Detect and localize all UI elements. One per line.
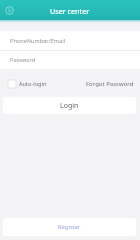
button[interactable]: Auto-login (8, 80, 47, 88)
staticText: Register (58, 223, 81, 231)
button[interactable]: Login (3, 97, 136, 114)
button[interactable]: Forgot Password (86, 80, 134, 88)
button[interactable]: Back (3, 4, 16, 17)
staticText: Auto-login (19, 80, 47, 88)
staticText: PhoneNumber/Email (10, 37, 66, 45)
staticText: Password (10, 56, 36, 64)
button[interactable]: Register (3, 218, 136, 236)
staticText: User center (50, 6, 90, 16)
staticText: Login (60, 101, 79, 111)
button[interactable]: Password (10, 51, 140, 69)
button[interactable]: PhoneNumber/Email (10, 31, 140, 50)
